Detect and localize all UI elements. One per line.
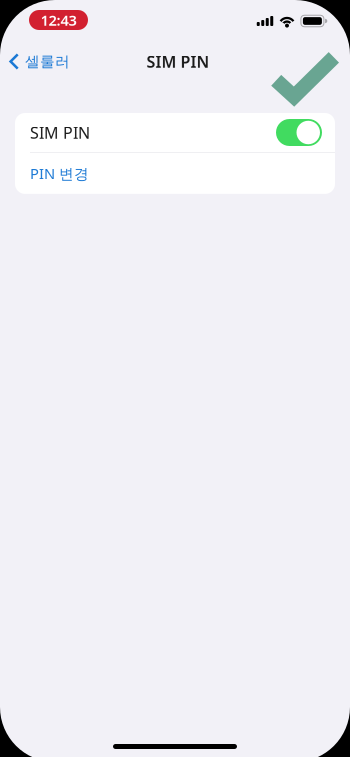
button[interactable]: 셀룰러 bbox=[0, 45, 78, 77]
staticText: SIM PIN bbox=[146, 51, 209, 72]
button[interactable]: PIN 변경 bbox=[15, 153, 335, 194]
staticText: SIM PIN bbox=[30, 122, 90, 143]
staticText: 12:43 bbox=[40, 10, 76, 30]
staticText: 셀룰러 bbox=[25, 52, 70, 70]
staticText: PIN 변경 bbox=[30, 164, 89, 183]
button[interactable]: SIM PIN bbox=[276, 119, 322, 146]
